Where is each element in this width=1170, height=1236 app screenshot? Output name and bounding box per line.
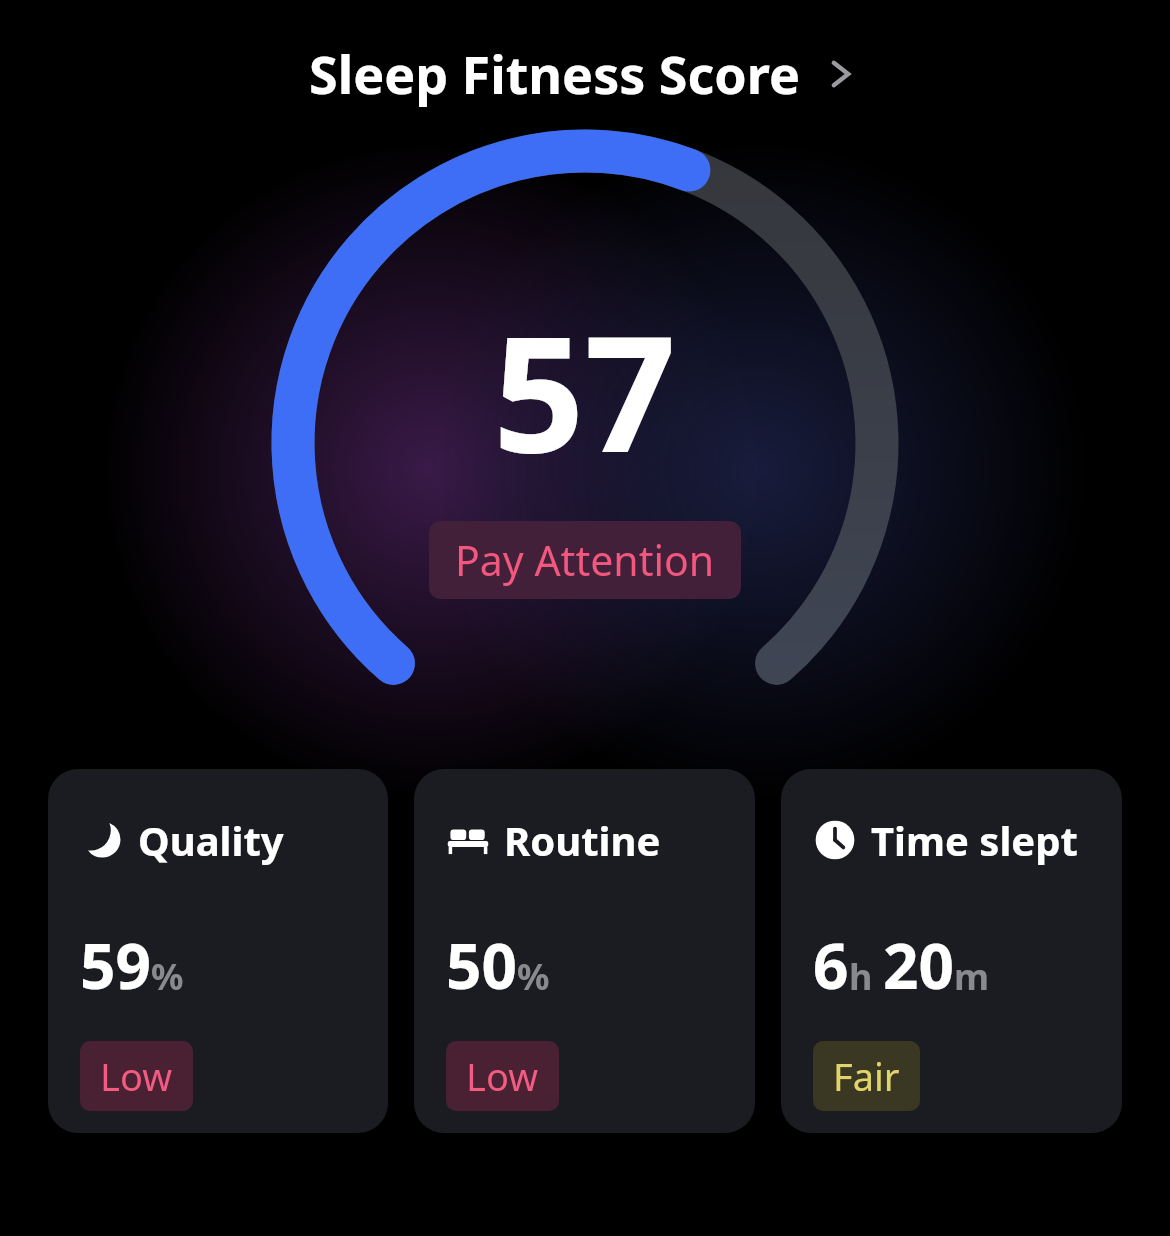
- staticText: Low: [100, 1050, 173, 1102]
- button[interactable]: Time slept: [781, 769, 1122, 1133]
- staticText: Time slept: [871, 813, 1078, 867]
- staticText: Low: [466, 1050, 539, 1102]
- staticText: Sleep Fitness Score: [309, 38, 801, 109]
- staticText: %: [517, 952, 550, 1001]
- staticText: Fair: [833, 1050, 900, 1102]
- button[interactable]: Sleep Fitness Score: [0, 38, 1170, 109]
- other: Time slept: [813, 818, 857, 862]
- staticText: %: [151, 952, 184, 1001]
- staticText: 57: [493, 281, 677, 499]
- staticText: h: [849, 952, 873, 1001]
- staticText: 20: [883, 923, 954, 1007]
- other: Sleep quality: [80, 818, 124, 862]
- button[interactable]: Pay Attention: [429, 521, 741, 599]
- staticText: 59: [80, 923, 151, 1007]
- staticText: 50: [446, 923, 517, 1007]
- button[interactable]: Sleep quality: [48, 769, 388, 1133]
- staticText: Routine: [504, 813, 661, 867]
- staticText: Pay Attention: [455, 532, 715, 588]
- other: Sleep routine: [446, 818, 490, 862]
- button[interactable]: Sleep routine: [414, 769, 755, 1133]
- staticText: Quality: [138, 813, 284, 867]
- staticText: m: [954, 952, 990, 1001]
- staticText: 6: [813, 923, 849, 1007]
